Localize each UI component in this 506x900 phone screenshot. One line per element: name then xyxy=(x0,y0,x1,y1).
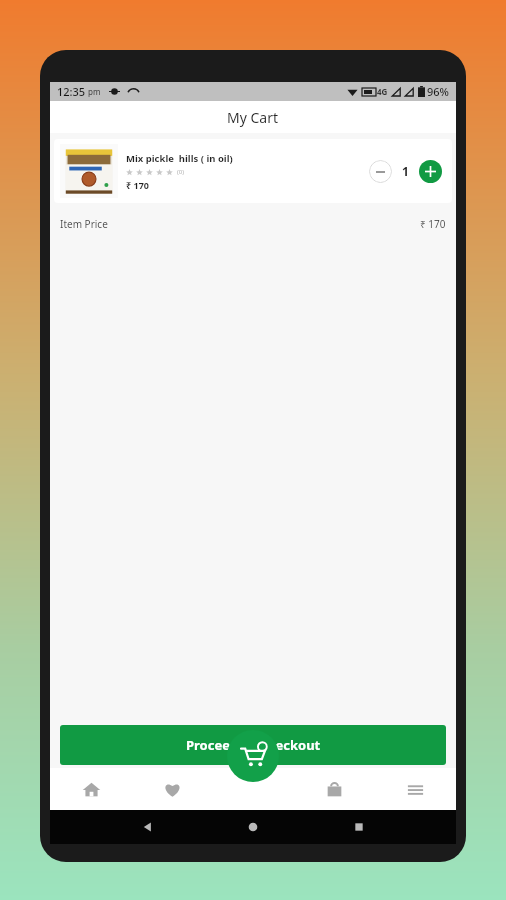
button[interactable]: Cart xyxy=(227,730,279,782)
staticText: ₹ 170 xyxy=(420,217,446,231)
button[interactable]: Proceed to Checkout xyxy=(60,725,446,765)
staticText: Mix pickle hills ( in oil) xyxy=(126,152,233,165)
staticText: 4G xyxy=(377,86,388,97)
staticText: Proceed to Checkout xyxy=(186,736,321,754)
button[interactable]: Menu xyxy=(375,768,456,810)
staticText: (0) xyxy=(177,168,185,176)
button[interactable]: Orders xyxy=(294,768,375,810)
staticText: pm xyxy=(88,86,101,97)
staticText: Item Price xyxy=(60,217,108,231)
button[interactable]: Favourites xyxy=(132,768,213,810)
staticText: 12:35 xyxy=(57,84,86,99)
button[interactable]: Mix pickle hills ( in oil) xyxy=(54,139,452,203)
staticText: 96% xyxy=(427,84,449,99)
button[interactable]: Increase quantity xyxy=(419,160,442,183)
staticText: ₹ 170 xyxy=(126,179,149,191)
staticText: 1 xyxy=(402,163,409,179)
staticText: My Cart xyxy=(227,108,279,127)
button[interactable]: Decrease quantity xyxy=(369,160,392,183)
button[interactable]: Home xyxy=(50,768,132,810)
